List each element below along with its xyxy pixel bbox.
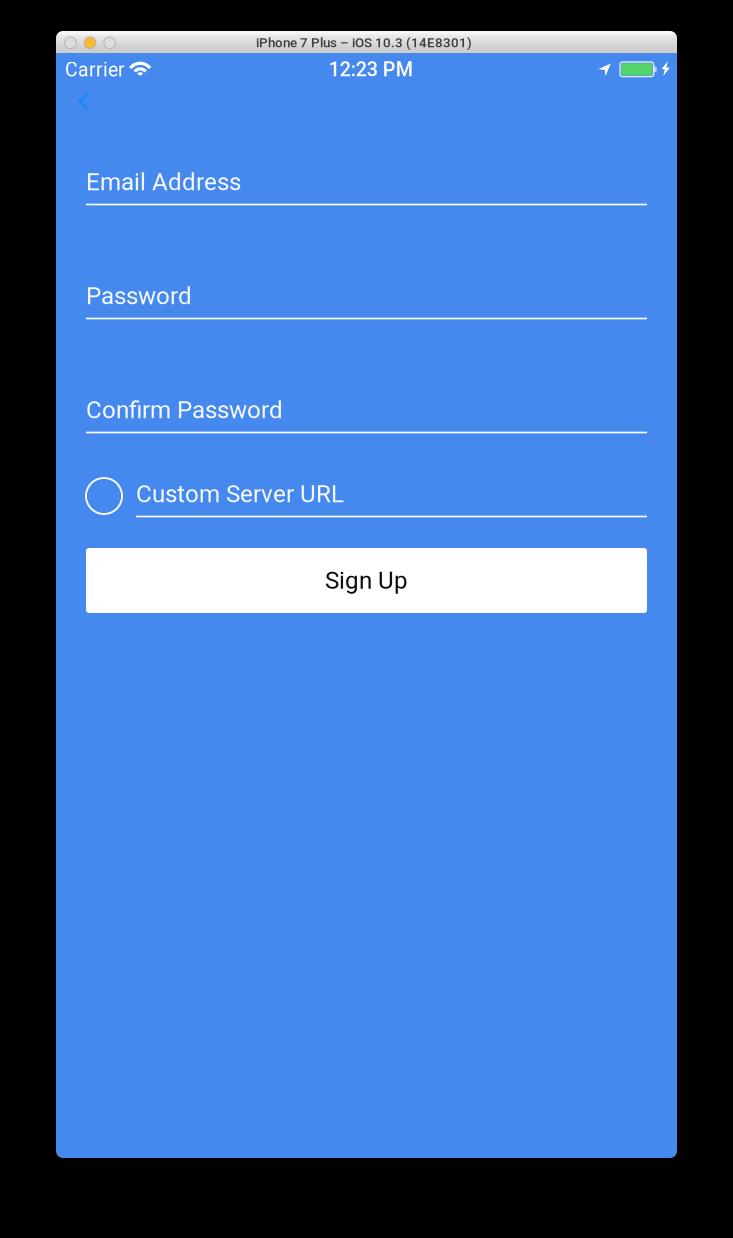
- staticText: Confirm Password: [86, 396, 283, 424]
- staticText: Sign Up: [325, 566, 408, 595]
- staticText: Carrier: [65, 58, 125, 81]
- staticText: Password: [86, 282, 192, 310]
- button[interactable]: Back: [58, 78, 110, 124]
- staticText: iPhone 7 Plus – iOS 10.3 (14E8301): [256, 35, 472, 50]
- staticText: Email Address: [86, 168, 241, 196]
- button[interactable]: Toggle custom server URL: [80, 472, 128, 520]
- staticText: Custom Server URL: [136, 480, 344, 508]
- staticText: 12:23 PM: [329, 58, 413, 81]
- button[interactable]: Sign Up: [86, 548, 647, 613]
